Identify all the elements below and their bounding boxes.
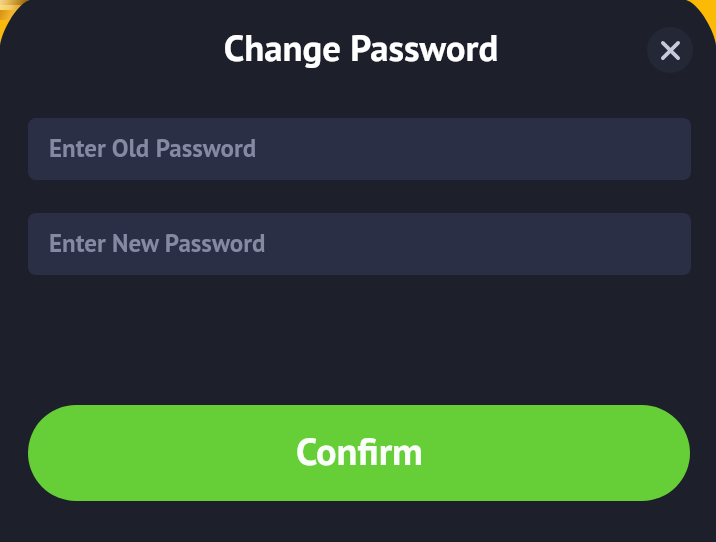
button[interactable]: Enter New Password (28, 213, 691, 275)
staticText: Enter Old Password (49, 132, 257, 164)
staticText: Enter New Password (49, 227, 266, 259)
staticText: Confirm (296, 426, 423, 476)
button[interactable]: Close (647, 27, 693, 73)
staticText: Change Password (3, 24, 716, 72)
button[interactable]: Enter Old Password (28, 118, 691, 180)
button[interactable]: Confirm (28, 405, 690, 501)
